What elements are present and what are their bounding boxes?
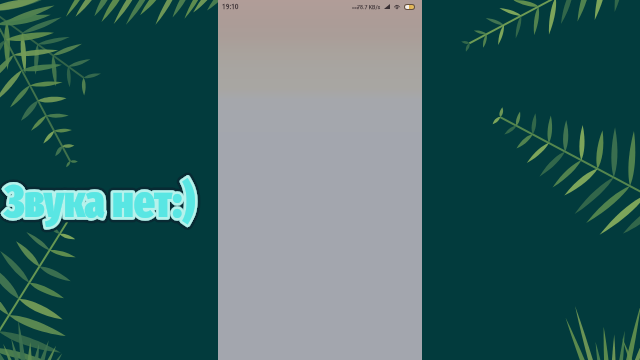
other: Wi-Fi — [394, 4, 400, 9]
button[interactable]: Звука нет:) — [4, 176, 195, 229]
other: Battery, power saving — [405, 5, 414, 9]
staticText: 19:10 — [222, 2, 239, 11]
other: Mobile signal — [384, 4, 390, 9]
staticText: Звука нет:) — [4, 176, 195, 229]
staticText: Звука нет:) — [4, 176, 195, 229]
staticText: 78.7 KB/s — [357, 3, 381, 10]
staticText: Звука нет:) — [4, 176, 195, 229]
